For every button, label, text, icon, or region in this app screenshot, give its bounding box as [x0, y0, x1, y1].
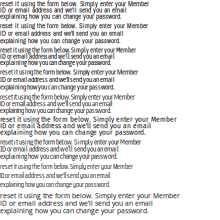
- staticText: reset it using the form below. Simply en…: [0, 92, 135, 114]
- staticText: reset it using the form below. Simply en…: [0, 191, 180, 215]
- staticText: reset it using the form below. Simply en…: [0, 67, 138, 91]
- staticText: reset it using the form below. Simply en…: [0, 46, 136, 66]
- staticText: reset it using the form below. Simply en…: [0, 115, 177, 136]
- staticText: reset it using the form below. Simply en…: [0, 0, 149, 20]
- staticText: reset it using the form below. Simply en…: [0, 161, 133, 190]
- staticText: reset it using the form below. Simply en…: [0, 21, 148, 45]
- staticText: reset it using the form below. Simply en…: [0, 137, 141, 160]
